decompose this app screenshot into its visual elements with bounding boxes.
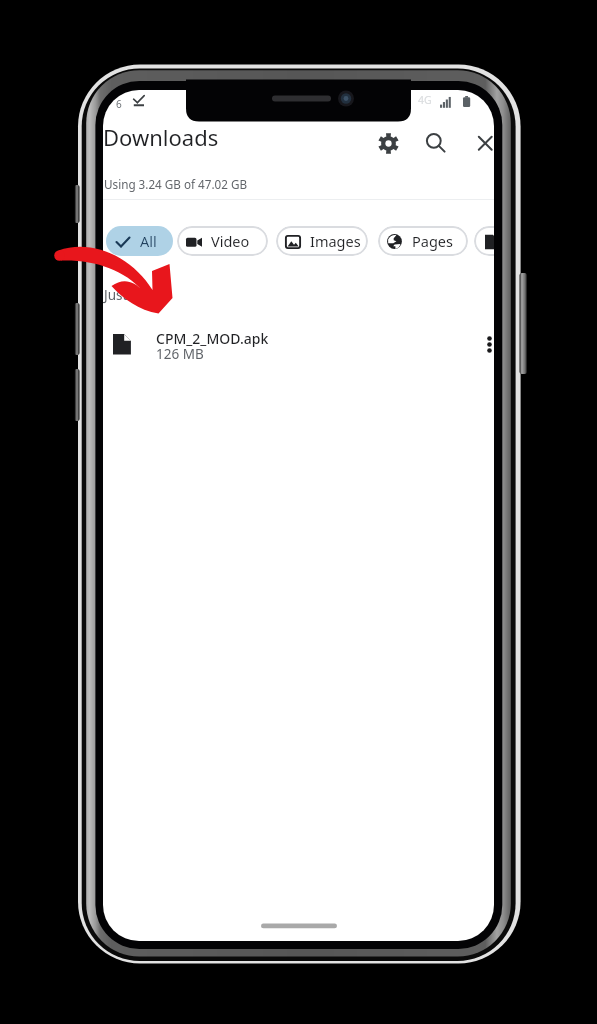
staticText: Downloads [103, 122, 219, 152]
staticText: All [140, 231, 157, 251]
button[interactable]: Settings [369, 126, 407, 160]
button[interactable]: Docs [474, 226, 494, 256]
staticText: 4G [418, 93, 432, 107]
button[interactable]: Video [177, 226, 268, 256]
staticText: Video [211, 231, 250, 251]
staticText: 126 MB [156, 345, 204, 363]
button[interactable]: Close [466, 126, 494, 160]
staticText: Pages [412, 231, 453, 251]
staticText: Just now [104, 286, 158, 304]
button[interactable]: Images [276, 226, 368, 256]
button[interactable]: Search [417, 126, 455, 160]
staticText: 6 [116, 97, 122, 111]
button[interactable] [103, 317, 494, 373]
button[interactable]: Pages [378, 226, 468, 256]
button[interactable]: More options [470, 325, 494, 363]
button[interactable]: All [106, 226, 173, 256]
staticText: CPM_2_MOD.apk [156, 329, 269, 348]
staticText: Using 3.24 GB of 47.02 GB [104, 176, 248, 192]
staticText: Images [310, 231, 361, 251]
